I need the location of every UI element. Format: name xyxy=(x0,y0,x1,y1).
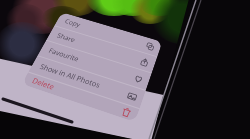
staticText: Delete xyxy=(30,76,57,93)
other: Share xyxy=(139,57,150,67)
button[interactable]: Share xyxy=(46,26,157,73)
staticText: Show in All Photos xyxy=(38,62,102,91)
staticText: Copy xyxy=(63,17,82,30)
button[interactable]: Show in All Photos xyxy=(28,56,146,108)
other: Favourite xyxy=(133,74,144,84)
button[interactable]: Delete xyxy=(21,72,139,122)
staticText: Share xyxy=(55,31,77,45)
other: Show in All Photos xyxy=(126,91,138,102)
button[interactable]: Favourite xyxy=(38,41,152,90)
button[interactable]: Copy xyxy=(54,12,162,56)
other: Copy xyxy=(145,42,155,51)
staticText: Favourite xyxy=(47,46,80,64)
other: Delete xyxy=(121,106,132,118)
